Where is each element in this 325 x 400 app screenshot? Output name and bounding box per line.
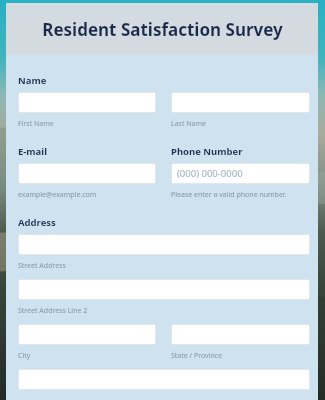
staticText: E-mail <box>18 145 47 158</box>
staticText: First Name <box>18 119 54 129</box>
button[interactable]: First Name <box>18 92 156 113</box>
staticText: Resident Satisfaction Survey <box>42 18 283 41</box>
button[interactable]: State / Province <box>171 324 310 345</box>
staticText: State / Province <box>171 351 223 361</box>
staticText: (000) 000-0000 <box>177 167 243 180</box>
staticText: Address <box>18 216 56 229</box>
staticText: Please enter a valid phone number. <box>171 190 287 200</box>
button[interactable]: Street Address Line 2 <box>18 279 310 300</box>
staticText: Street Address <box>18 261 66 271</box>
staticText: Name <box>18 74 47 87</box>
button[interactable]: City <box>18 324 156 345</box>
staticText: Street Address Line 2 <box>18 306 88 316</box>
button[interactable]: Postal / Zip Code <box>18 369 310 390</box>
staticText: City <box>18 351 31 361</box>
button[interactable]: Street Address <box>18 234 310 255</box>
button[interactable]: E-mail <box>18 163 156 184</box>
button[interactable]: Last Name <box>171 92 310 113</box>
staticText: Last Name <box>171 119 207 129</box>
staticText: example@example.com <box>18 190 97 200</box>
button[interactable]: Phone Number <box>171 163 310 184</box>
staticText: Phone Number <box>171 145 243 158</box>
